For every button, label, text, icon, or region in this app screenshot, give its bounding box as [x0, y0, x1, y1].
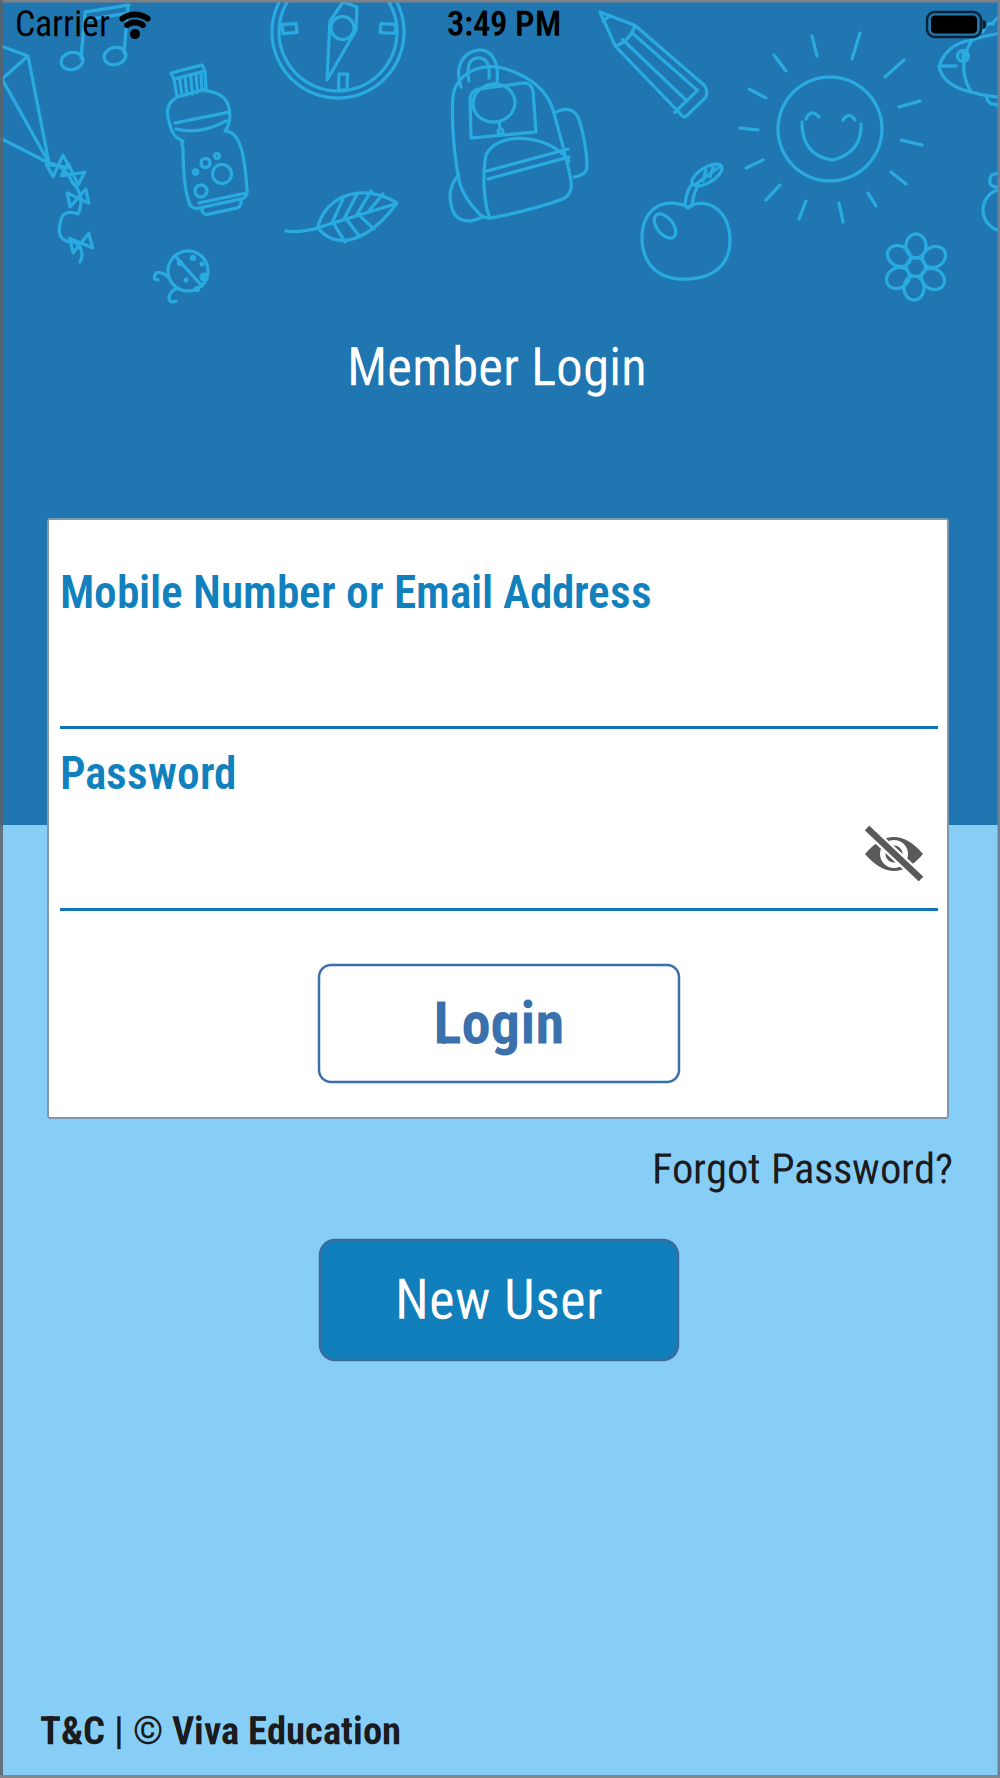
staticText: T&C | © Viva Education	[40, 1708, 401, 1754]
button[interactable]: Login	[319, 965, 679, 1082]
staticText: New User	[395, 1268, 603, 1332]
button[interactable]: Mobile Number or Email Address	[60, 559, 938, 729]
staticText: Password	[60, 747, 236, 800]
staticText: Mobile Number or Email Address	[60, 566, 652, 619]
button[interactable]: T&C | © Viva Education	[40, 1708, 960, 1754]
staticText: Forgot Password?	[652, 1144, 953, 1194]
staticText: Login	[433, 989, 564, 1058]
staticText: Member Login	[347, 336, 647, 398]
button[interactable]	[862, 827, 926, 883]
staticText: Carrier	[15, 3, 110, 45]
button[interactable]: Forgot Password?	[53, 1144, 953, 1194]
staticText: 3:49 PM	[447, 4, 561, 44]
button[interactable]: Password	[60, 731, 938, 911]
button[interactable]: New User	[320, 1240, 678, 1360]
